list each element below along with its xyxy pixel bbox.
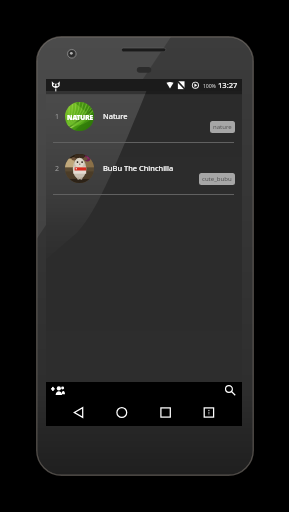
button[interactable]: Home: [112, 399, 132, 426]
staticText: 13:27: [218, 80, 238, 90]
button[interactable]: 2: [46, 143, 242, 194]
staticText: 2: [55, 164, 60, 174]
staticText: NATURE: [67, 113, 93, 122]
button[interactable]: Add people: [48, 382, 68, 399]
staticText: cute_bubu: [202, 175, 232, 183]
staticText: 1: [55, 112, 60, 122]
staticText: BuBu The Chinchilla: [103, 163, 174, 173]
staticText: nature: [213, 123, 232, 131]
button[interactable]: Recents: [156, 399, 176, 426]
button[interactable]: 1: [46, 91, 242, 142]
button[interactable]: nature: [210, 121, 235, 133]
staticText: 100%: [203, 82, 216, 89]
button[interactable]: cute_bubu: [199, 173, 235, 185]
button[interactable]: Split screen: [199, 399, 219, 426]
button[interactable]: Search: [220, 382, 240, 399]
staticText: Nature: [103, 111, 128, 121]
